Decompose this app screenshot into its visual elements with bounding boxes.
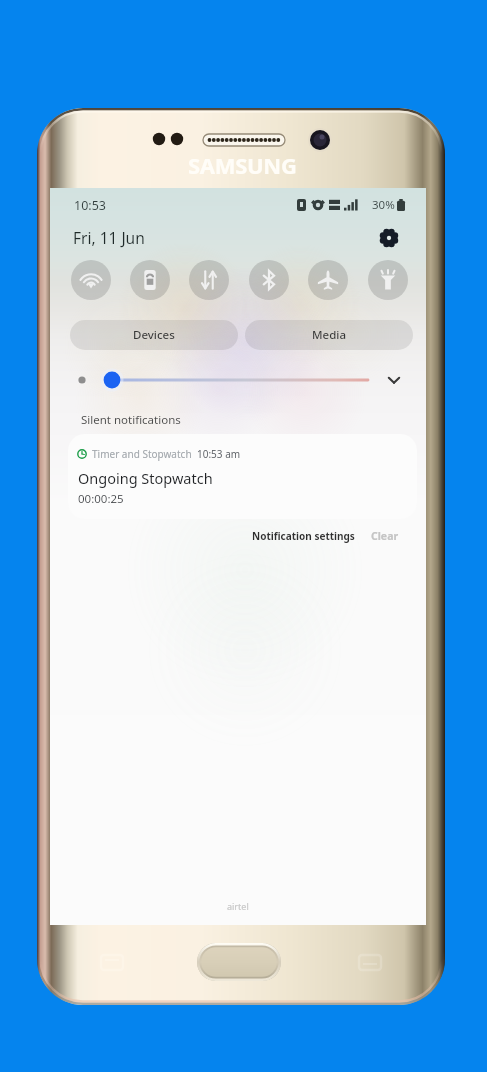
staticText: Timer and Stopwatch (92, 447, 192, 461)
button[interactable]: Wi-Fi (71, 260, 111, 300)
staticText: 10:53 (74, 197, 106, 214)
button[interactable]: Sound (130, 260, 170, 300)
staticText: Media (312, 327, 346, 343)
button[interactable]: Media (245, 320, 413, 350)
button[interactable]: Airplane mode (308, 260, 348, 300)
staticText: SAMSUNG (188, 150, 297, 180)
button[interactable]: Quick settings (377, 226, 401, 250)
button[interactable]: Devices (70, 320, 238, 350)
button[interactable]: Clear (366, 524, 404, 548)
button[interactable]: Back (355, 951, 385, 973)
staticText: 30% (372, 197, 395, 213)
button[interactable]: Timer and Stopwatch (68, 434, 417, 519)
staticText: airtel (227, 900, 249, 912)
staticText: 10:53 am (197, 447, 241, 461)
button[interactable]: Brightness (96, 368, 382, 392)
button[interactable]: Mobile data (189, 260, 229, 300)
button[interactable]: Bluetooth (249, 260, 289, 300)
staticText: Clear (371, 529, 399, 543)
staticText: Devices (133, 327, 175, 343)
button[interactable]: Flashlight (368, 260, 408, 300)
staticText: 00:00:25 (78, 491, 124, 507)
button[interactable]: Expand quick settings (382, 368, 406, 392)
staticText: Fri, 11 Jun (73, 227, 145, 248)
button[interactable]: Notification settings (247, 524, 360, 548)
button[interactable]: Home (197, 943, 281, 981)
staticText: Notification settings (252, 529, 355, 543)
staticText: Silent notifications (81, 412, 181, 428)
staticText: Ongoing Stopwatch (78, 468, 213, 488)
